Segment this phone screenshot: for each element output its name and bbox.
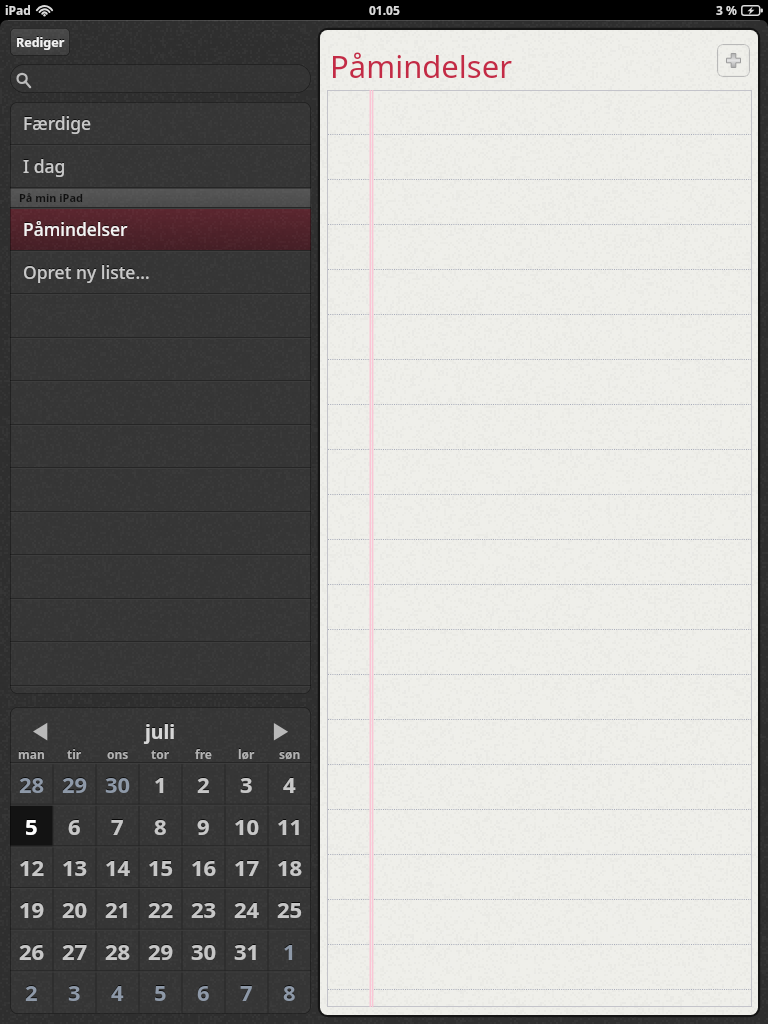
staticText: 10	[234, 811, 260, 841]
button[interactable]: 14	[96, 846, 139, 888]
staticText: 5	[25, 811, 38, 841]
staticText: 18	[277, 852, 303, 882]
button[interactable]: 25	[268, 888, 311, 930]
staticText: 30	[191, 936, 217, 966]
staticText: 24	[234, 894, 260, 924]
button[interactable]: 5	[139, 971, 182, 1013]
button[interactable]: 3	[225, 763, 268, 805]
button[interactable]: 9	[182, 805, 225, 847]
button[interactable]: 31	[225, 930, 268, 972]
button[interactable]: 1	[139, 763, 182, 805]
staticText: 14	[105, 852, 131, 882]
staticText: 4	[111, 977, 124, 1007]
button[interactable]: 29	[139, 930, 182, 972]
staticText: man	[18, 746, 45, 762]
button[interactable]: 6	[53, 805, 96, 847]
button[interactable]: 8	[268, 971, 311, 1013]
staticText: 29	[148, 936, 174, 966]
button[interactable]: 4	[268, 763, 311, 805]
staticText: 22	[148, 894, 174, 924]
staticText: 3	[240, 769, 253, 799]
staticText: 21	[105, 894, 131, 924]
button[interactable]: Næste måned	[266, 716, 300, 746]
staticText: lør	[238, 746, 255, 762]
button[interactable]: 7	[225, 971, 268, 1013]
staticText: 4	[283, 769, 296, 799]
staticText: 6	[197, 977, 210, 1007]
button[interactable]: Færdige	[10, 102, 311, 144]
button[interactable]: 27	[53, 930, 96, 972]
button[interactable]: Tilføj påmindelse	[717, 44, 750, 77]
button[interactable]: I dag	[10, 144, 311, 187]
staticText: 30	[105, 769, 131, 799]
staticText: 28	[19, 769, 45, 799]
staticText: 8	[283, 977, 296, 1007]
staticText: 27	[62, 936, 88, 966]
staticText: 01.05	[369, 2, 400, 18]
button[interactable]: 1	[268, 930, 311, 972]
staticText: 17	[234, 852, 260, 882]
button[interactable]: 11	[268, 805, 311, 847]
button[interactable]: 18	[268, 846, 311, 888]
staticText: 9	[197, 811, 210, 841]
staticText: 1	[283, 936, 296, 966]
staticText: Opret ny liste…	[23, 260, 150, 284]
button[interactable]: 6	[182, 971, 225, 1013]
button[interactable]: Rediger	[10, 28, 70, 56]
staticText: tor	[151, 746, 170, 762]
button[interactable]: 4	[96, 971, 139, 1013]
staticText: I dag	[23, 154, 66, 178]
staticText: søn	[279, 746, 301, 762]
button[interactable]: 24	[225, 888, 268, 930]
staticText: Færdige	[23, 111, 92, 135]
button[interactable]	[10, 64, 311, 93]
button[interactable]: 7	[96, 805, 139, 847]
staticText: 7	[111, 811, 124, 841]
staticText: 29	[62, 769, 88, 799]
button[interactable]	[10, 207, 311, 250]
staticText: 8	[154, 811, 167, 841]
staticText: 1	[154, 769, 167, 799]
button[interactable]: Påmindelser	[10, 207, 311, 250]
button[interactable]: 23	[182, 888, 225, 930]
staticText: 28	[105, 936, 131, 966]
staticText: ons	[107, 746, 129, 762]
staticText: 3	[68, 977, 81, 1007]
staticText: 15	[148, 852, 174, 882]
staticText: 16	[191, 852, 217, 882]
staticText: 23	[191, 894, 217, 924]
button[interactable]: 12	[10, 846, 53, 888]
staticText: iPad	[5, 2, 31, 18]
staticText: 5	[154, 977, 167, 1007]
button[interactable]: 8	[139, 805, 182, 847]
staticText: Påmindelser	[330, 45, 512, 87]
button[interactable]: 2	[10, 971, 53, 1013]
button[interactable]: 19	[10, 888, 53, 930]
staticText: Påmindelser	[23, 217, 128, 241]
staticText: fre	[195, 746, 212, 762]
button[interactable]: 13	[53, 846, 96, 888]
staticText: juli	[145, 718, 176, 745]
button[interactable]: 26	[10, 930, 53, 972]
button[interactable]: 20	[53, 888, 96, 930]
staticText: 11	[277, 811, 303, 841]
button[interactable]: Opret ny liste…	[10, 250, 311, 294]
button[interactable]: 3	[53, 971, 96, 1013]
button[interactable]: 22	[139, 888, 182, 930]
staticText: 7	[240, 977, 253, 1007]
button[interactable]: 17	[225, 846, 268, 888]
button[interactable]: 29	[53, 763, 96, 805]
button[interactable]: Forrige måned	[18, 716, 52, 746]
button[interactable]: 10	[225, 805, 268, 847]
staticText: 19	[19, 894, 45, 924]
button[interactable]: 30	[182, 930, 225, 972]
button[interactable]: 15	[139, 846, 182, 888]
button[interactable]: 28	[10, 763, 53, 805]
button[interactable]: 16	[182, 846, 225, 888]
button[interactable]: 21	[96, 888, 139, 930]
button[interactable]: 5	[10, 805, 53, 847]
staticText: 12	[19, 852, 45, 882]
button[interactable]: 30	[96, 763, 139, 805]
button[interactable]: 2	[182, 763, 225, 805]
button[interactable]: 28	[96, 930, 139, 972]
